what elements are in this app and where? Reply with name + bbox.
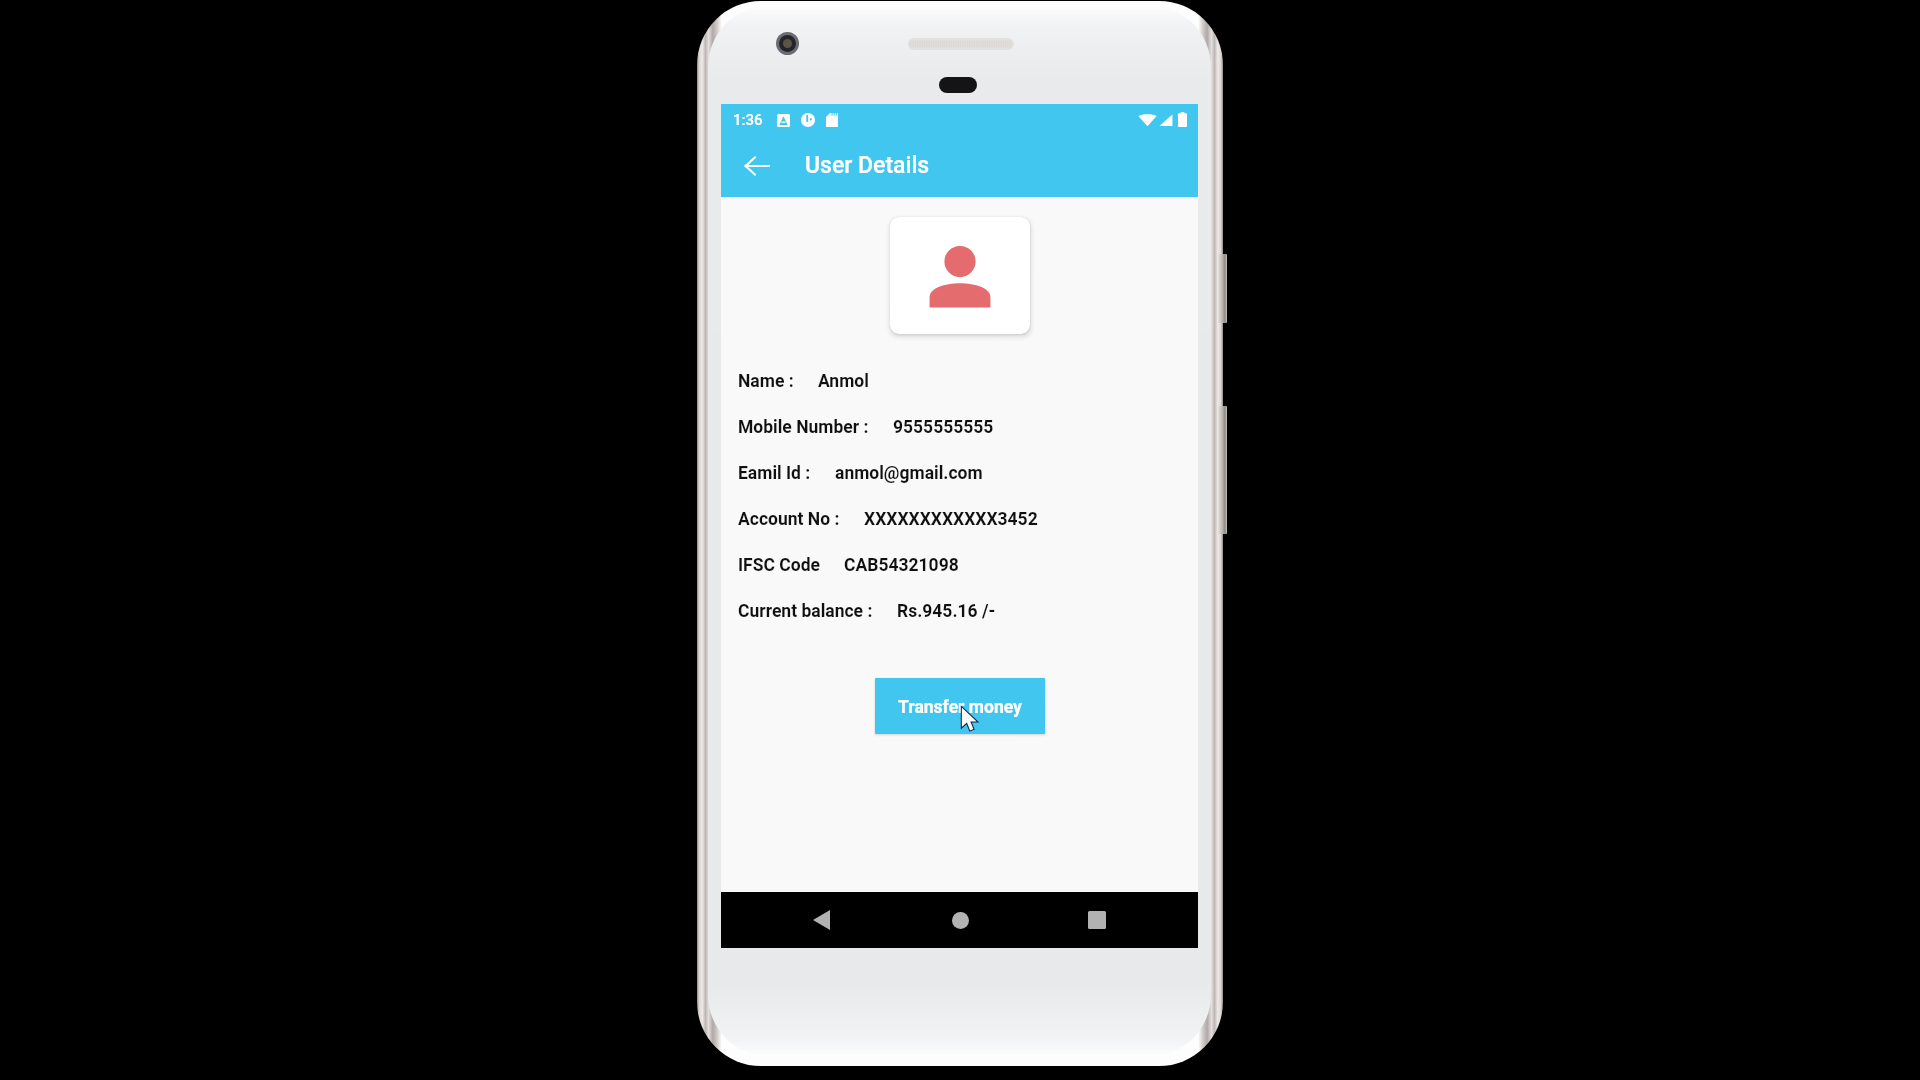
button[interactable]: Home [936, 896, 984, 944]
button[interactable]: Back [741, 150, 773, 182]
button[interactable]: Transfer money [875, 678, 1045, 734]
staticText: User Details [805, 152, 930, 179]
staticText: Anmol [818, 371, 869, 392]
staticText: XXXXXXXXXXXX3452 [864, 509, 1038, 530]
staticText: Name : [738, 371, 794, 392]
staticText: anmol@gmail.com [835, 463, 983, 484]
button[interactable]: Back [797, 896, 845, 944]
staticText: Current balance : [738, 601, 873, 622]
staticText: 9555555555 [893, 417, 994, 438]
staticText: Rs.945.16 /- [897, 601, 996, 622]
staticText: CAB54321098 [844, 555, 959, 576]
staticText: Transfer money [898, 697, 1022, 718]
staticText: IFSC Code [738, 555, 820, 576]
button[interactable]: Recents [1073, 896, 1121, 944]
staticText: Eamil Id : [738, 463, 811, 484]
staticText: Account No : [738, 509, 840, 530]
staticText: 1:36 [733, 111, 763, 129]
staticText: Mobile Number : [738, 417, 869, 438]
